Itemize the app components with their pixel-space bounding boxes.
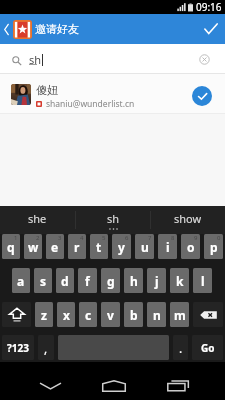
staticText: y xyxy=(118,239,125,255)
staticText: c xyxy=(85,307,92,323)
button[interactable]: s xyxy=(34,268,52,293)
staticText: k xyxy=(176,273,184,289)
button[interactable]: v xyxy=(101,302,120,327)
staticText: n xyxy=(153,307,161,323)
staticText: 1 xyxy=(14,234,18,242)
staticText: 5 xyxy=(102,234,106,242)
staticText: d xyxy=(61,273,69,289)
staticText: 傻妞 xyxy=(36,83,58,97)
button[interactable]: w xyxy=(24,234,42,259)
staticText: o xyxy=(187,239,195,255)
button[interactable]: u xyxy=(135,234,154,259)
staticText: 09:16 xyxy=(196,0,222,14)
staticText: show xyxy=(174,211,202,226)
button[interactable]: e xyxy=(46,234,64,259)
button[interactable]: n xyxy=(147,302,166,327)
button[interactable]: Clear xyxy=(197,52,212,67)
staticText: x xyxy=(63,307,70,323)
staticText: 9 xyxy=(194,234,198,242)
staticText: ?123 xyxy=(7,341,29,355)
button[interactable]: Home xyxy=(82,371,146,400)
staticText: l xyxy=(201,273,205,289)
button[interactable]: Selected xyxy=(192,86,212,106)
button[interactable]: Symbols xyxy=(2,335,34,360)
staticText: q xyxy=(7,239,15,255)
staticText: 2 xyxy=(36,234,40,242)
button[interactable]: k xyxy=(170,268,189,293)
button[interactable]: r xyxy=(68,234,86,259)
staticText: r xyxy=(74,239,80,255)
button[interactable]: m xyxy=(170,302,189,327)
staticText: e xyxy=(51,239,59,255)
staticText: . xyxy=(179,340,183,356)
staticText: 6 xyxy=(125,234,129,242)
staticText: 3 xyxy=(58,234,62,242)
button[interactable]: c xyxy=(79,302,97,327)
staticText: j xyxy=(155,273,159,289)
button[interactable]: f xyxy=(78,268,97,293)
button[interactable]: y xyxy=(112,234,131,259)
staticText: z xyxy=(41,307,47,323)
staticText: f xyxy=(85,273,90,289)
staticText: 0 xyxy=(217,234,221,242)
staticText: w xyxy=(28,239,39,255)
staticText: v xyxy=(107,307,114,323)
staticText: sh xyxy=(29,52,42,67)
staticText: she xyxy=(28,211,47,226)
button[interactable]: Back xyxy=(0,14,13,44)
staticText: , xyxy=(44,340,48,356)
button[interactable]: x xyxy=(57,302,75,327)
button[interactable]: h xyxy=(124,268,143,293)
button[interactable]: j xyxy=(147,268,166,293)
button[interactable]: Comma xyxy=(38,335,54,360)
button[interactable]: i xyxy=(158,234,177,259)
button[interactable]: q xyxy=(2,234,20,259)
button[interactable]: Shift xyxy=(2,302,31,327)
button[interactable]: o xyxy=(181,234,200,259)
staticText: 4 xyxy=(80,234,84,242)
staticText: 8 xyxy=(171,234,175,242)
staticText: Go xyxy=(201,341,215,355)
staticText: shaniu@wunderlist.cn xyxy=(46,98,135,110)
staticText: s xyxy=(40,273,47,289)
button[interactable]: Period xyxy=(173,335,188,360)
button[interactable]: g xyxy=(101,268,120,293)
button[interactable]: she xyxy=(0,206,75,234)
button[interactable]: Recents xyxy=(146,371,210,400)
staticText: 邀请好友 xyxy=(35,22,79,36)
staticText: m xyxy=(174,307,186,323)
staticText: t xyxy=(96,239,102,255)
staticText: p xyxy=(210,239,218,255)
staticText: 7 xyxy=(148,234,152,242)
button[interactable]: l xyxy=(193,268,212,293)
button[interactable]: Back xyxy=(18,371,82,400)
button[interactable]: Backspace xyxy=(193,302,223,327)
button[interactable]: show xyxy=(151,206,225,234)
button[interactable]: z xyxy=(35,302,53,327)
button[interactable]: a xyxy=(12,268,30,293)
button[interactable]: Search xyxy=(10,54,23,67)
button[interactable]: b xyxy=(124,302,143,327)
staticText: a xyxy=(17,273,25,289)
button[interactable]: Done xyxy=(197,14,225,44)
staticText: sh xyxy=(107,211,120,226)
staticText: h xyxy=(130,273,138,289)
button[interactable]: Go xyxy=(192,335,223,360)
staticText: i xyxy=(166,239,170,255)
button[interactable]: d xyxy=(56,268,74,293)
button[interactable]: 傻妞 xyxy=(0,74,225,114)
staticText: u xyxy=(141,239,149,255)
button[interactable]: sh xyxy=(76,206,150,234)
button[interactable]: p xyxy=(204,234,223,259)
staticText: g xyxy=(107,273,115,289)
button[interactable]: t xyxy=(90,234,108,259)
staticText: b xyxy=(130,307,138,323)
